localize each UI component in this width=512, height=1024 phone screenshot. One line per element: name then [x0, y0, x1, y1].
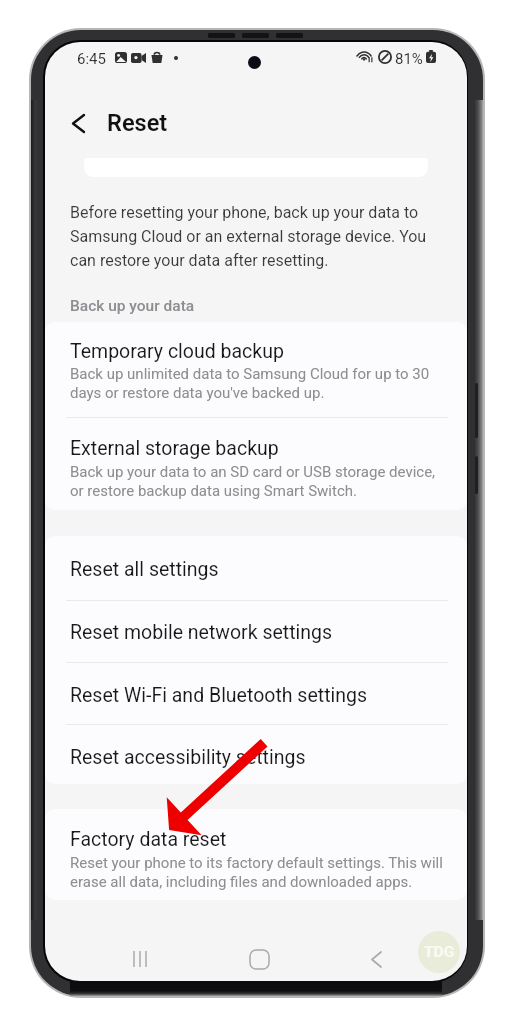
- staticText: Reset all settings: [70, 558, 219, 581]
- staticText: Reset mobile network settings: [70, 621, 333, 644]
- button[interactable]: [45, 322, 467, 417]
- button[interactable]: [45, 536, 467, 600]
- button[interactable]: Navigate up: [56, 101, 100, 145]
- staticText: Reset your phone to its factory default …: [70, 854, 450, 890]
- staticText: Back up your data to an SD card or USB s…: [70, 463, 450, 499]
- staticText: Before resetting your phone, back up you…: [70, 203, 432, 270]
- staticText: Reset accessibility settings: [70, 746, 306, 769]
- staticText: 6:45: [77, 50, 106, 68]
- staticText: Reset: [107, 109, 168, 137]
- staticText: Factory data reset: [70, 828, 227, 851]
- staticText: TDG: [424, 943, 455, 961]
- staticText: Back up your data: [70, 297, 195, 315]
- button[interactable]: [45, 724, 467, 784]
- staticText: 81%: [395, 50, 423, 68]
- staticText: Back up unlimited data to Samsung Cloud …: [70, 365, 450, 401]
- button[interactable]: [45, 417, 467, 510]
- button[interactable]: [45, 809, 467, 900]
- button[interactable]: [45, 662, 467, 724]
- button[interactable]: Back: [354, 937, 398, 981]
- button[interactable]: [45, 600, 467, 662]
- staticText: Reset Wi-Fi and Bluetooth settings: [70, 684, 368, 707]
- staticText: Temporary cloud backup: [70, 340, 284, 363]
- staticText: External storage backup: [70, 437, 279, 460]
- button[interactable]: Home: [237, 937, 281, 981]
- button[interactable]: Recent apps: [118, 937, 162, 981]
